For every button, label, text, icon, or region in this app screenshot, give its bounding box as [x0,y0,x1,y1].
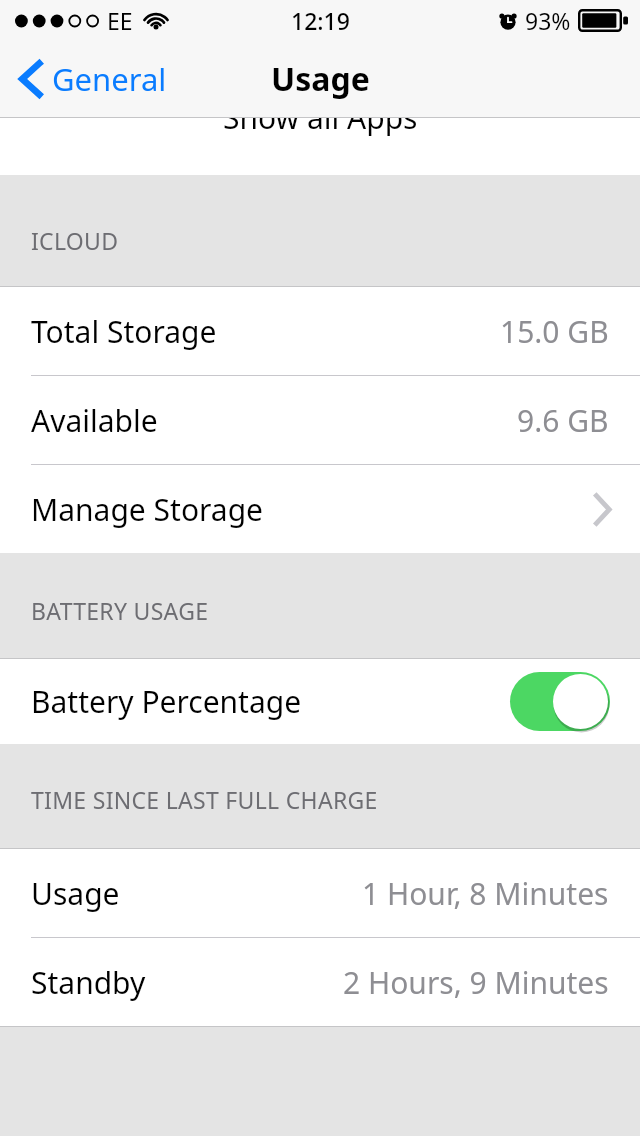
staticText: Total Storage [31,311,217,352]
staticText: 1 Hour, 8 Minutes [362,873,609,914]
staticText: Show all Apps [223,118,418,138]
staticText: BATTERY USAGE [31,595,209,626]
button[interactable]: Manage Storage [0,465,640,553]
staticText: Manage Storage [31,489,264,530]
staticText: 2 Hours, 9 Minutes [343,962,609,1003]
button[interactable]: Show all Apps [0,118,640,175]
staticText: Usage [31,873,120,914]
button[interactable]: Battery Percentage [0,659,640,744]
staticText: 9.6 GB [517,400,609,441]
staticText: 93% [525,5,571,36]
staticText: EE [107,5,133,36]
staticText: Available [31,400,158,441]
staticText: 15.0 GB [500,311,609,352]
button[interactable]: General [18,58,167,100]
staticText: 12:19 [291,5,350,36]
staticText: Standby [31,962,146,1003]
button[interactable]: Usage [0,849,640,937]
button[interactable]: Available [0,376,640,464]
staticText: Usage [271,57,370,101]
staticText: Battery Percentage [31,681,302,722]
button[interactable]: Total Storage [0,287,640,375]
button[interactable]: Battery Percentage, on [510,672,610,731]
staticText: ICLOUD [31,225,119,256]
button[interactable]: Standby [0,938,640,1026]
staticText: TIME SINCE LAST FULL CHARGE [31,784,378,815]
staticText: General [52,58,167,100]
